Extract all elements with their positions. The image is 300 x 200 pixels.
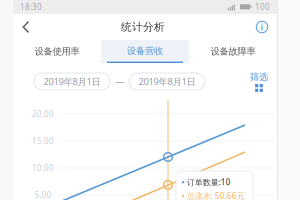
staticText: 15.00: [32, 136, 54, 146]
staticText: 2019年8月1日: [138, 75, 195, 88]
staticText: 订单数量:10: [187, 177, 231, 187]
staticText: 5.00: [34, 190, 51, 200]
staticText: 20.00: [32, 109, 54, 119]
button[interactable]: Info: [247, 14, 277, 40]
staticText: 2019年8月1日: [43, 75, 100, 88]
staticText: 10.00: [32, 163, 54, 173]
staticText: i: [260, 21, 263, 33]
staticText: 100: [255, 2, 270, 12]
button[interactable]: Back: [13, 14, 39, 40]
button[interactable]: 设备故障率: [189, 40, 277, 63]
button[interactable]: 筛选: [250, 71, 268, 92]
staticText: —: [115, 75, 124, 88]
staticText: 筛选: [250, 71, 268, 83]
staticText: 18:30: [20, 2, 42, 12]
button[interactable]: 设备使用率: [13, 40, 101, 63]
staticText: 设备营收: [127, 45, 163, 57]
button[interactable]: 2019年8月1日: [129, 73, 205, 90]
button[interactable]: 设备营收: [101, 40, 189, 63]
staticText: 设备使用率: [34, 46, 79, 57]
button[interactable]: 2019年8月1日: [34, 73, 110, 90]
staticText: 设备故障率: [210, 46, 255, 57]
staticText: 总流水: 50.66元: [187, 190, 245, 200]
staticText: 统计分析: [121, 20, 165, 33]
